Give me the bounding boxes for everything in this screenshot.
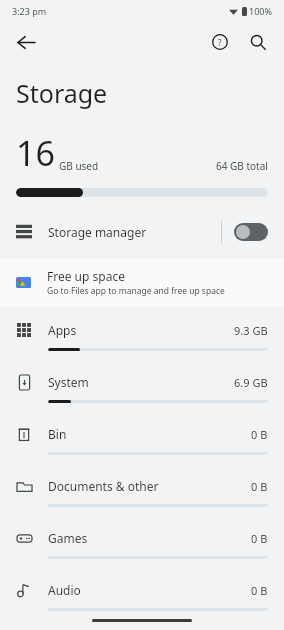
staticText: 0 B bbox=[251, 479, 268, 494]
staticText: 0 B bbox=[251, 427, 268, 442]
button[interactable]: Free up space bbox=[0, 259, 284, 306]
button[interactable]: Storage manager toggle bbox=[234, 223, 268, 241]
staticText: Storage manager bbox=[48, 224, 147, 240]
button[interactable]: Storage manager bbox=[0, 213, 284, 251]
staticText: GB used bbox=[59, 159, 99, 173]
staticText: Go to Files app to manage and free up sp… bbox=[47, 285, 225, 297]
button[interactable]: Help bbox=[204, 26, 236, 58]
staticText: Bin bbox=[48, 426, 67, 442]
button[interactable]: System bbox=[0, 364, 284, 416]
staticText: Audio bbox=[48, 582, 81, 598]
staticText: Storage bbox=[16, 76, 108, 110]
staticText: 0 B bbox=[251, 583, 268, 598]
button[interactable]: Back bbox=[10, 26, 42, 58]
staticText: 9.3 GB bbox=[234, 323, 268, 338]
staticText: 6.9 GB bbox=[234, 375, 268, 390]
button[interactable]: Bin bbox=[0, 416, 284, 468]
staticText: Documents & other bbox=[48, 478, 159, 494]
button[interactable]: Documents & other bbox=[0, 468, 284, 520]
staticText: ? bbox=[218, 37, 222, 48]
staticText: System bbox=[48, 374, 89, 390]
button[interactable]: Apps bbox=[0, 312, 284, 364]
button[interactable]: Search bbox=[242, 26, 274, 58]
button[interactable]: Audio bbox=[0, 572, 284, 624]
staticText: 3:23 pm bbox=[12, 5, 47, 17]
staticText: 16 bbox=[16, 130, 55, 176]
staticText: Games bbox=[48, 530, 88, 546]
staticText: 64 GB total bbox=[216, 159, 268, 173]
staticText: 0 B bbox=[251, 531, 268, 546]
staticText: Apps bbox=[48, 322, 77, 338]
staticText: 100% bbox=[249, 5, 272, 17]
button[interactable]: Games bbox=[0, 520, 284, 572]
staticText: Free up space bbox=[47, 268, 125, 284]
